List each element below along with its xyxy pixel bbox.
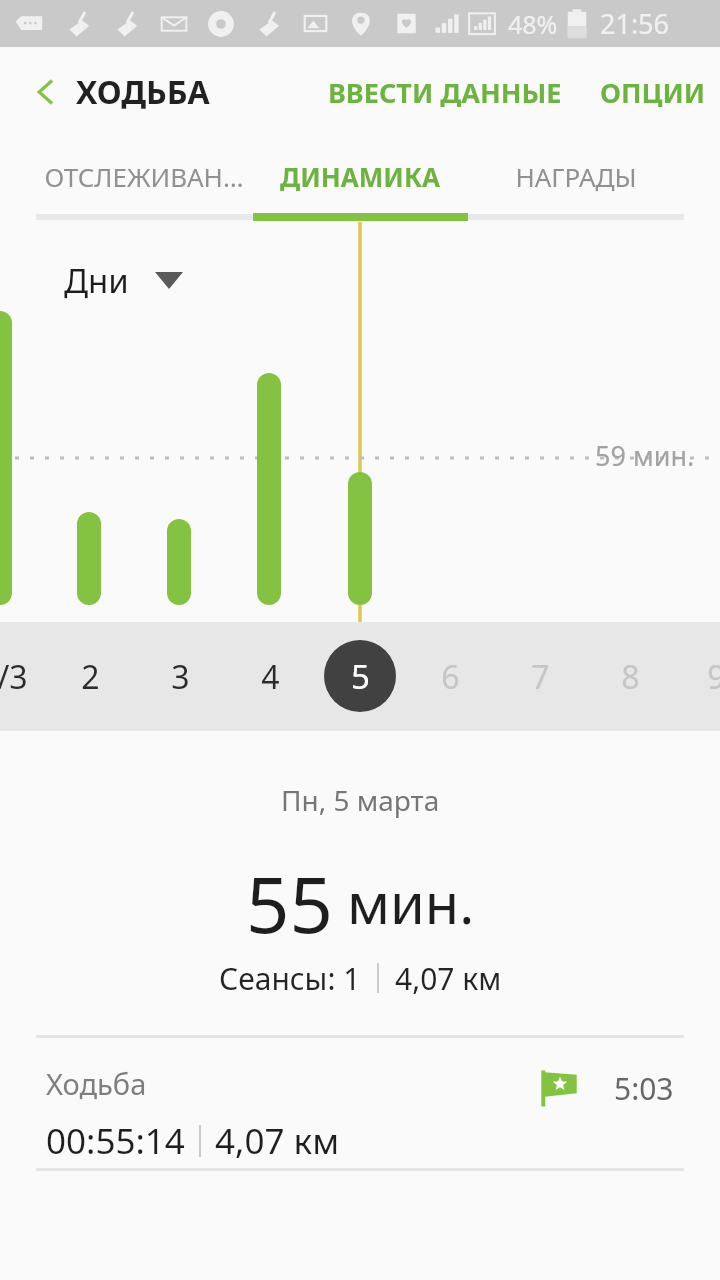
staticText: 5 [351, 654, 370, 699]
staticText: ОТСЛЕЖИВАН… [44, 159, 244, 194]
button[interactable]: ДИНАМИКА [252, 137, 468, 215]
staticText: 8 [621, 655, 640, 699]
button[interactable]: 8 [590, 634, 670, 719]
staticText: /3 [0, 655, 28, 699]
button[interactable]: 2 [50, 634, 130, 719]
button[interactable]: ОПЦИИ [590, 58, 720, 127]
staticText: 2 [81, 655, 100, 699]
button[interactable]: /3 [0, 634, 52, 719]
staticText: 4,07 км [395, 958, 502, 999]
staticText: ДИНАМИКА [280, 159, 440, 194]
staticText: 9 [707, 655, 720, 699]
staticText: 21:56 [600, 5, 670, 42]
staticText: НАГРАДЫ [515, 159, 637, 194]
staticText: 7 [531, 655, 550, 699]
staticText: Пн, 5 марта [281, 781, 440, 819]
button[interactable]: 5 [324, 640, 396, 712]
staticText: 5:03 [614, 1068, 674, 1109]
button[interactable]: 4 [230, 634, 310, 719]
button[interactable]: Дни [64, 254, 193, 307]
button[interactable]: 3 [140, 634, 220, 719]
staticText: 3 [171, 655, 190, 699]
button[interactable]: НАГРАДЫ [468, 137, 684, 215]
button[interactable]: ОТСЛЕЖИВАН… [36, 137, 252, 215]
staticText: 4 [261, 655, 280, 699]
button[interactable]: 7 [500, 634, 580, 719]
staticText: 48% [508, 7, 558, 41]
staticText: мин. [347, 864, 475, 940]
staticText: ХОДЬБА [76, 70, 210, 114]
staticText: Дни [64, 258, 129, 303]
button[interactable]: 6 [410, 634, 490, 719]
button[interactable]: 9 [676, 634, 720, 719]
staticText: ВВЕСТИ ДАННЫЕ [328, 74, 562, 111]
button[interactable]: ВВЕСТИ ДАННЫЕ [318, 58, 572, 127]
staticText: 55 [246, 852, 333, 942]
button[interactable]: Ходьба [0, 1038, 720, 1168]
staticText: Сеансы: 1 [219, 958, 361, 999]
staticText: 4,07 км [215, 1117, 340, 1165]
staticText: Ходьба [46, 1064, 147, 1103]
staticText: 00:55:14 [46, 1117, 185, 1165]
staticText: ОПЦИИ [600, 74, 706, 111]
staticText: 6 [441, 655, 460, 699]
staticText: 59 мин. [595, 437, 695, 474]
button[interactable]: Back [20, 66, 72, 118]
